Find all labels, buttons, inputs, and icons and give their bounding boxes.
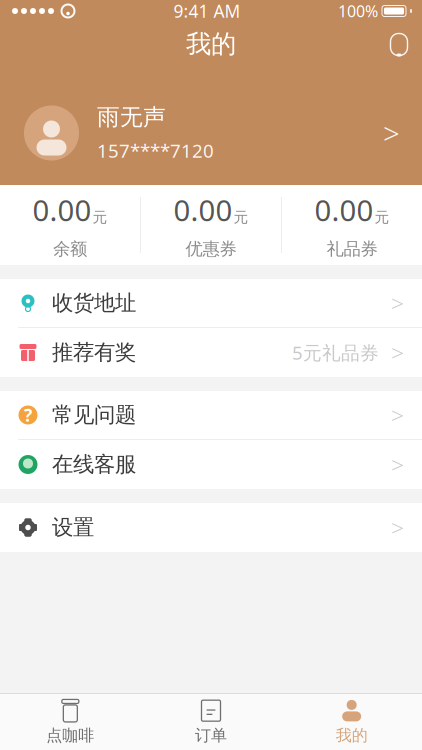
staticText: 我的 [186, 28, 236, 59]
staticText: 收货地址 [52, 290, 136, 316]
staticText: 5元礼品券 [292, 340, 379, 365]
button[interactable]: 我的 [281, 694, 422, 750]
button[interactable]: 设置 [0, 503, 422, 552]
staticText: 元 [92, 208, 107, 226]
button[interactable]: 在线客服 [0, 440, 422, 489]
staticText: 0.00 [32, 190, 91, 229]
staticText: 礼品券 [326, 238, 377, 260]
staticText: > [391, 512, 404, 542]
button[interactable]: 0.00 [0, 185, 140, 265]
staticText: > [391, 449, 404, 479]
button[interactable]: 收货地址 [0, 279, 422, 328]
staticText: 常见问题 [52, 402, 136, 428]
staticText: 订单 [195, 726, 227, 745]
staticText: 9:41 AM [173, 0, 240, 22]
staticText: > [391, 288, 404, 318]
staticText: 元 [374, 208, 389, 226]
staticText: 设置 [52, 514, 94, 541]
button[interactable]: Notifications [376, 22, 422, 66]
staticText: > [391, 337, 404, 367]
staticText: 推荐有奖 [52, 339, 136, 366]
button[interactable]: 雨无声 [0, 95, 422, 171]
staticText: 点咖啡 [46, 726, 94, 745]
button[interactable]: ? [0, 391, 422, 440]
button[interactable]: 0.00 [282, 185, 422, 265]
staticText: 优惠券 [185, 238, 236, 260]
staticText: 在线客服 [52, 451, 136, 478]
button[interactable]: 订单 [141, 694, 281, 750]
staticText: 余额 [53, 238, 87, 260]
staticText: > [391, 400, 404, 430]
staticText: 0.00 [173, 190, 232, 229]
staticText: > [383, 113, 400, 152]
button[interactable]: 点咖啡 [0, 694, 141, 750]
staticText: 157****7120 [97, 138, 214, 163]
staticText: 0.00 [314, 190, 373, 229]
button[interactable]: 推荐有奖 [0, 328, 422, 377]
staticText: 元 [233, 208, 248, 226]
staticText: 雨无声 [97, 103, 166, 131]
button[interactable]: 0.00 [141, 185, 281, 265]
staticText: 100% [338, 0, 378, 22]
staticText: ? [24, 403, 32, 426]
staticText: 我的 [336, 726, 368, 745]
